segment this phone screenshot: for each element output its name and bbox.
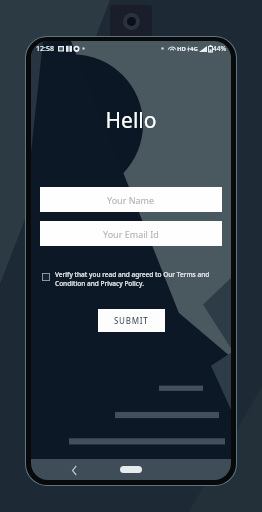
button[interactable]: SUBMIT <box>98 309 165 332</box>
staticText: SUBMIT <box>114 315 149 326</box>
staticText: Verify that you read and agreed to Our T… <box>55 270 223 288</box>
button[interactable]: Back <box>67 463 81 477</box>
staticText: 12:58 <box>36 44 54 54</box>
button[interactable]: Your Name <box>40 187 222 212</box>
button[interactable]: Your Email Id <box>40 221 222 246</box>
staticText: Your Email Id <box>103 228 159 240</box>
button[interactable]: Home <box>120 466 142 473</box>
staticText: HD <box>177 45 186 53</box>
staticText: 4G <box>190 45 198 53</box>
staticText: Hello <box>31 106 231 135</box>
staticText: 44% <box>213 44 226 53</box>
button[interactable]: Verify that you read and agreed to Our T… <box>42 270 223 288</box>
staticText: Your Name <box>107 194 155 206</box>
